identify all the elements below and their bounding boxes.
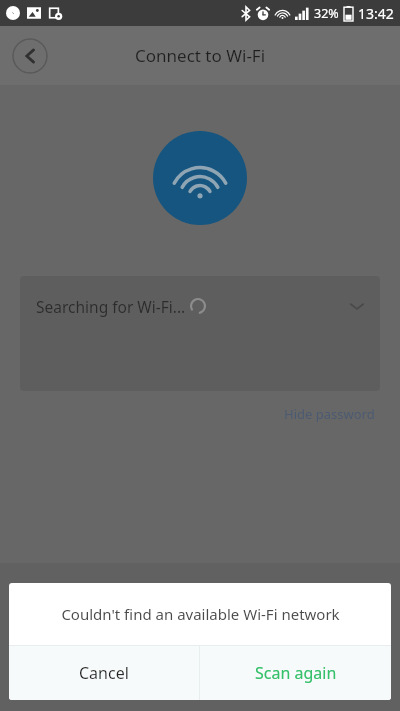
- staticText: 13:42: [358, 4, 394, 23]
- staticText: Couldn't find an available Wi-Fi network: [61, 604, 340, 624]
- staticText: Connect to Wi-Fi: [135, 44, 266, 67]
- staticText: Scan again: [255, 662, 337, 684]
- staticText: Hide password: [284, 405, 375, 423]
- staticText: 32%: [314, 5, 339, 22]
- button[interactable]: Hide password: [281, 402, 378, 426]
- button[interactable]: Scan again: [200, 646, 391, 700]
- button[interactable]: Searching for Wi-Fi...: [20, 276, 380, 391]
- staticText: Searching for Wi-Fi...: [36, 296, 186, 317]
- button[interactable]: Back: [12, 38, 48, 74]
- button[interactable]: Cancel: [9, 646, 199, 700]
- staticText: Cancel: [79, 662, 129, 684]
